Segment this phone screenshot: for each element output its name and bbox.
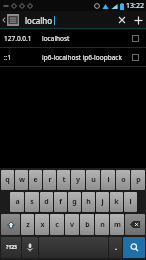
- staticText: v: [70, 220, 74, 230]
- button[interactable]: k: [110, 192, 123, 212]
- button[interactable]: z: [21, 214, 34, 235]
- button[interactable]: i: [101, 170, 115, 190]
- button[interactable]: e: [29, 170, 42, 190]
- button[interactable]: Symbols: [1, 237, 21, 258]
- button[interactable]: q: [1, 170, 14, 190]
- staticText: o: [121, 175, 126, 185]
- button[interactable]: y: [71, 170, 85, 190]
- staticText: m: [114, 220, 121, 230]
- button[interactable]: g: [68, 192, 81, 212]
- staticText: ::1: [4, 53, 42, 62]
- button[interactable]: t: [57, 170, 70, 190]
- button[interactable]: Backspace: [125, 214, 145, 235]
- staticText: t: [62, 175, 66, 185]
- button[interactable]: v: [65, 214, 79, 235]
- staticText: r: [48, 175, 52, 185]
- staticText: n: [100, 220, 105, 230]
- staticText: y: [76, 175, 80, 185]
- button[interactable]: s: [25, 192, 39, 212]
- button[interactable]: Space: [39, 237, 108, 258]
- button[interactable]: ::1: [0, 48, 146, 66]
- staticText: p: [136, 175, 141, 185]
- button[interactable]: r: [43, 170, 56, 190]
- staticText: i: [107, 175, 110, 185]
- staticText: 13:22: [126, 1, 144, 11]
- staticText: ?123: [6, 244, 17, 251]
- staticText: localhost: [42, 34, 128, 43]
- staticText: localho: [25, 15, 53, 26]
- staticText: x: [40, 220, 45, 230]
- button[interactable]: m: [110, 214, 124, 235]
- button[interactable]: h: [82, 192, 95, 212]
- button[interactable]: u: [86, 170, 100, 190]
- staticText: .: [115, 243, 117, 253]
- staticText: s: [30, 197, 34, 207]
- button[interactable]: o: [116, 170, 130, 190]
- button[interactable]: Navigate up: [0, 11, 21, 29]
- button[interactable]: Shift: [1, 214, 20, 235]
- button[interactable]: x: [35, 214, 49, 235]
- button[interactable]: Search: [123, 237, 145, 258]
- button[interactable]: Toggle localhost: [128, 31, 142, 45]
- staticText: k: [114, 197, 119, 207]
- button[interactable]: b: [80, 214, 94, 235]
- button[interactable]: Add host: [130, 11, 146, 29]
- staticText: z: [26, 220, 30, 230]
- button[interactable]: j: [96, 192, 109, 212]
- staticText: j: [101, 197, 104, 207]
- staticText: d: [44, 197, 49, 207]
- button[interactable]: n: [95, 214, 109, 235]
- staticText: 127.0.0.1: [4, 34, 42, 43]
- staticText: g: [72, 197, 77, 207]
- button[interactable]: localho: [21, 11, 114, 29]
- staticText: c: [55, 220, 59, 230]
- button[interactable]: p: [131, 170, 145, 190]
- button[interactable]: Toggle ip6-localhost ip6-loopback: [128, 50, 142, 64]
- staticText: b: [85, 220, 90, 230]
- staticText: a: [15, 197, 20, 207]
- button[interactable]: w: [15, 170, 28, 190]
- button[interactable]: f: [54, 192, 67, 212]
- button[interactable]: l: [124, 192, 137, 212]
- button[interactable]: Period: [109, 237, 122, 258]
- staticText: l: [129, 197, 132, 207]
- staticText: ip6-localhost ip6-loopback: [42, 53, 128, 62]
- staticText: f: [59, 197, 62, 207]
- staticText: q: [5, 175, 10, 185]
- staticText: u: [91, 175, 96, 185]
- button[interactable]: c: [50, 214, 64, 235]
- staticText: e: [33, 175, 38, 185]
- button[interactable]: a: [10, 192, 24, 212]
- staticText: w: [19, 175, 25, 185]
- button[interactable]: Clear query: [114, 11, 130, 29]
- button[interactable]: Voice input: [22, 237, 38, 258]
- staticText: h: [86, 197, 91, 207]
- button[interactable]: d: [40, 192, 53, 212]
- button[interactable]: 127.0.0.1: [0, 29, 146, 47]
